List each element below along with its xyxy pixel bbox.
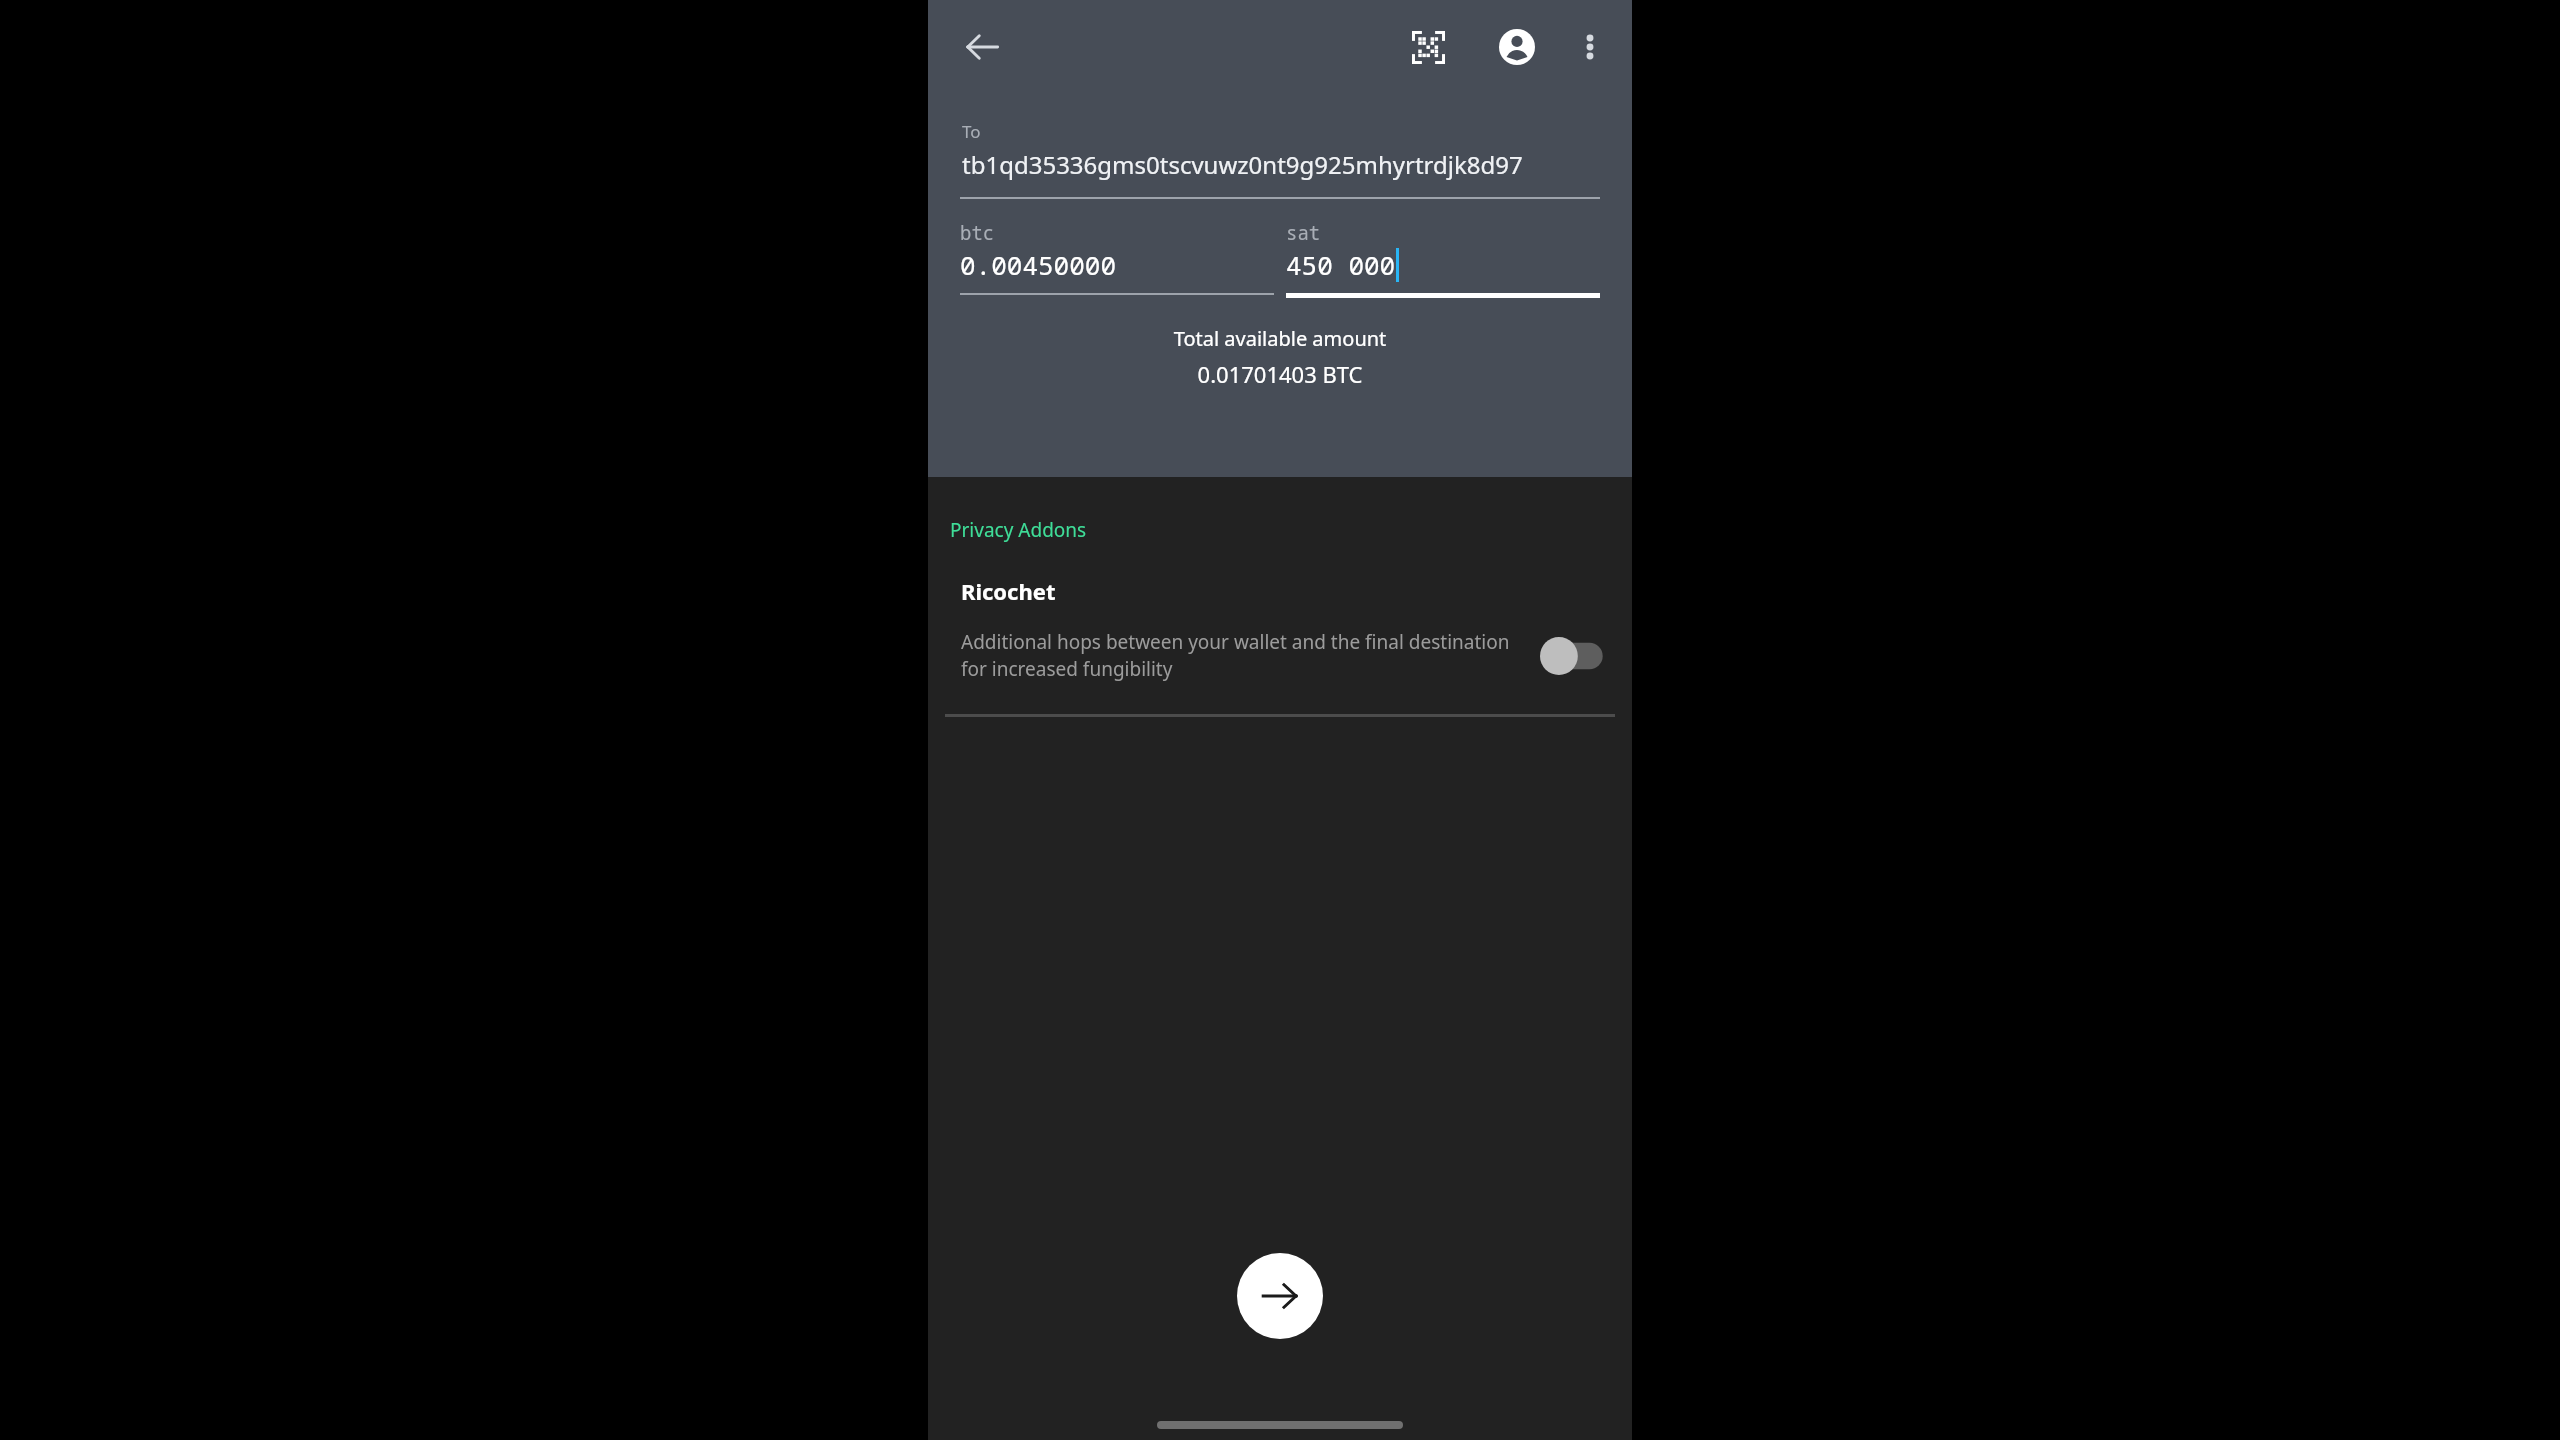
staticText: 0.01701403 BTC bbox=[928, 359, 1632, 389]
button[interactable]: Scan QR code bbox=[1399, 18, 1457, 76]
button[interactable]: Ricochet bbox=[928, 576, 1632, 717]
staticText: Additional hops between your wallet and … bbox=[961, 629, 1518, 682]
staticText: Ricochet bbox=[961, 576, 1056, 606]
staticText: Total available amount bbox=[928, 325, 1632, 352]
button[interactable]: Account bbox=[1488, 18, 1546, 76]
button[interactable]: More options bbox=[1562, 19, 1618, 75]
staticText: Privacy Addons bbox=[950, 517, 1087, 543]
staticText: 0.00450000 bbox=[960, 247, 1117, 282]
staticText: To bbox=[962, 120, 981, 143]
button[interactable]: sat bbox=[1286, 220, 1600, 298]
button[interactable]: btc bbox=[960, 220, 1274, 295]
button[interactable]: Continue bbox=[1237, 1253, 1323, 1339]
staticText: sat bbox=[1286, 220, 1321, 246]
staticText: tb1qd35336gms0tscvuwz0nt9g925mhyrtrdjk8d… bbox=[962, 148, 1523, 181]
button[interactable]: Ricochet, off bbox=[1540, 634, 1604, 678]
staticText: btc bbox=[960, 220, 995, 246]
staticText: 450 000 bbox=[1286, 247, 1396, 282]
button[interactable]: Back bbox=[954, 19, 1010, 75]
